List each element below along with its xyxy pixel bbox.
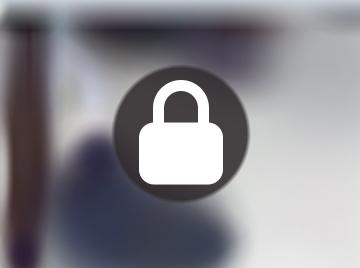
button[interactable]: Content locked [111, 64, 251, 204]
